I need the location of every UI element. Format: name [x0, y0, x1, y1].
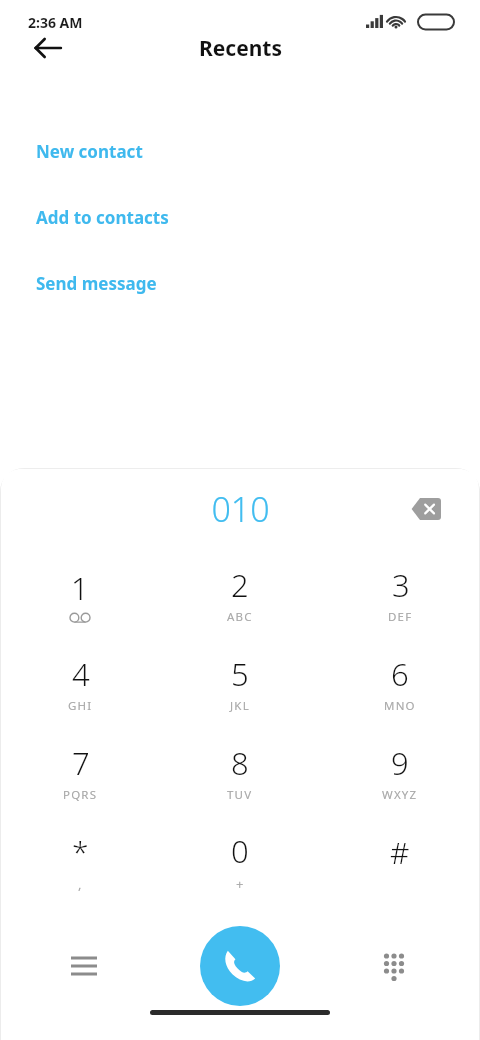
staticText: 7 [72, 742, 90, 784]
button[interactable]: Call [200, 926, 280, 1006]
staticText: New contact [36, 140, 143, 163]
button[interactable]: Back [22, 22, 74, 74]
staticText: JKL [230, 698, 250, 714]
staticText: * [72, 831, 89, 872]
button[interactable]: 5 [160, 639, 320, 728]
staticText: ABC [227, 609, 253, 625]
staticText: 0 [231, 830, 249, 872]
button[interactable]: Call log menu [56, 938, 112, 994]
button[interactable]: 2 [160, 550, 320, 639]
button[interactable]: 6 [320, 639, 480, 728]
staticText: GHI [68, 698, 93, 714]
staticText: TUV [227, 787, 253, 803]
staticText: WXYZ [382, 787, 418, 803]
staticText: 3 [392, 564, 410, 606]
button[interactable]: 0 [160, 817, 320, 906]
staticText: MNO [384, 698, 416, 714]
staticText: 9 [391, 742, 409, 784]
staticText: 010 [211, 486, 270, 532]
staticText: 4 [72, 653, 90, 695]
button[interactable]: 8 [160, 728, 320, 817]
staticText: 2 [231, 564, 249, 606]
staticText: 1 [71, 567, 89, 609]
staticText: 2:36 AM [28, 13, 83, 32]
button[interactable]: * [0, 817, 160, 906]
button[interactable]: 7 [0, 728, 160, 817]
staticText: DEF [388, 609, 413, 625]
button[interactable]: Send message [0, 250, 480, 316]
button[interactable]: 1 [0, 550, 160, 639]
staticText: Recents [199, 34, 282, 63]
button[interactable]: Backspace [402, 485, 450, 533]
button[interactable]: 3 [320, 550, 480, 639]
staticText: + [236, 875, 245, 893]
button[interactable]: New contact [0, 118, 480, 184]
staticText: Send message [36, 272, 157, 295]
button[interactable]: Add to contacts [0, 184, 480, 250]
button[interactable]: 9 [320, 728, 480, 817]
staticText: # [390, 832, 410, 873]
staticText: PQRS [63, 787, 98, 803]
staticText: , [78, 875, 83, 893]
button[interactable]: # [320, 817, 480, 906]
staticText: 5 [231, 653, 249, 695]
staticText: 6 [391, 653, 409, 695]
staticText: Add to contacts [36, 206, 169, 229]
staticText: 8 [231, 742, 249, 784]
button[interactable]: Dialpad [366, 938, 422, 994]
button[interactable]: 4 [0, 639, 160, 728]
